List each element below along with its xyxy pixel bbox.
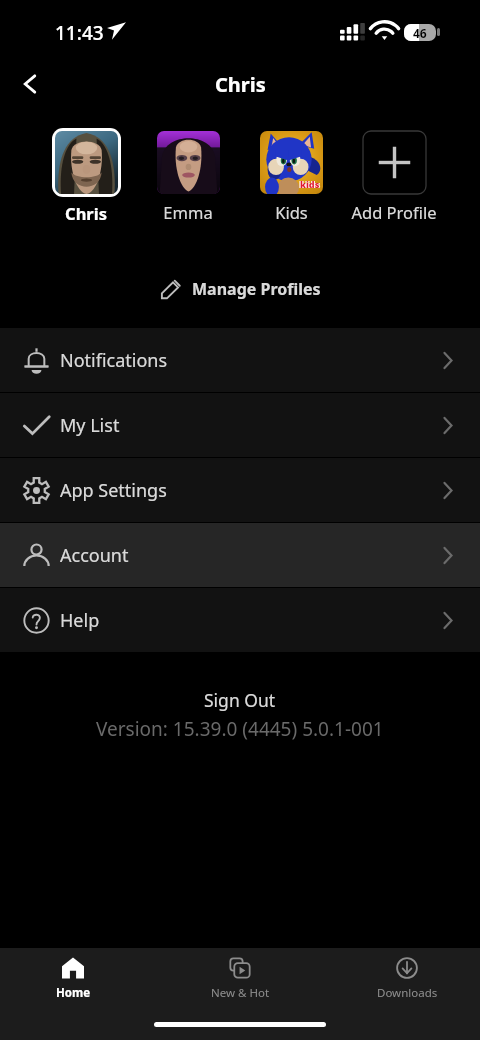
staticText: Account	[60, 543, 129, 568]
staticText: Emma	[163, 201, 213, 223]
button[interactable]: Manage Profiles	[148, 272, 333, 306]
staticText: Notifications	[60, 348, 168, 373]
button[interactable]: Help	[0, 588, 480, 652]
staticText: 46	[413, 25, 427, 41]
staticText: Manage Profiles	[192, 278, 321, 300]
staticText: Version: 15.39.0 (4445) 5.0.1-001	[96, 716, 384, 742]
staticText: Sign Out	[204, 688, 276, 712]
staticText: Help	[60, 608, 100, 633]
button[interactable]: kids	[243, 126, 339, 223]
staticText: Chris	[215, 71, 266, 98]
staticText: Downloads	[377, 985, 438, 1001]
button[interactable]: Home	[18, 948, 128, 1010]
staticText: Add Profile	[351, 201, 437, 223]
staticText: New & Hot	[211, 985, 270, 1001]
staticText: App Settings	[60, 478, 167, 503]
staticText: kids	[300, 178, 320, 190]
button[interactable]: Emma	[140, 126, 236, 223]
button[interactable]: Add Profile	[346, 126, 442, 223]
staticText: My List	[60, 413, 120, 438]
staticText: 11:43	[55, 20, 104, 46]
button[interactable]: New & Hot	[185, 948, 295, 1010]
staticText: Chris	[65, 202, 107, 224]
button[interactable]: My List	[0, 393, 480, 457]
button[interactable]: Back	[8, 62, 52, 106]
staticText: Kids	[275, 201, 308, 223]
button[interactable]: App Settings	[0, 458, 480, 522]
button[interactable]: Downloads	[352, 948, 462, 1010]
button[interactable]: Sign Out	[176, 684, 304, 716]
button[interactable]: Chris	[38, 126, 134, 224]
staticText: Home	[56, 985, 91, 1001]
staticText: kids	[301, 178, 321, 190]
staticText: kids	[299, 178, 319, 190]
button[interactable]: Account	[0, 523, 480, 587]
button[interactable]: Notifications	[0, 328, 480, 392]
